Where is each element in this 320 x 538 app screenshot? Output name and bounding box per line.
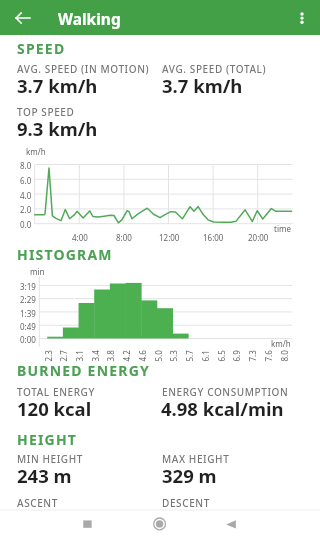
staticText: 243 m xyxy=(17,463,72,488)
staticText: DESCENT xyxy=(162,496,210,510)
button[interactable]: Home xyxy=(147,511,172,536)
staticText: 0.0 xyxy=(20,219,32,230)
button[interactable]: Back xyxy=(10,4,38,32)
staticText: 5.0 xyxy=(152,349,163,361)
staticText: 8.0 xyxy=(20,160,32,171)
staticText: 6.9 xyxy=(230,349,241,361)
staticText: km/h xyxy=(26,146,46,157)
staticText: Walking xyxy=(58,8,121,29)
staticText: 0:00 xyxy=(20,334,36,345)
staticText: TOTAL ENERGY xyxy=(17,385,95,399)
staticText: TOP SPEED xyxy=(17,105,75,119)
staticText: 2.7 xyxy=(57,349,68,361)
staticText: 3:19 xyxy=(20,281,36,292)
staticText: time xyxy=(274,223,291,234)
staticText: 0:49 xyxy=(20,321,36,332)
staticText: 2.3 xyxy=(42,349,53,361)
staticText: 16:00 xyxy=(203,232,224,243)
staticText: ENERGY CONSUMPTION xyxy=(162,385,289,399)
staticText: 120 kcal xyxy=(17,396,92,421)
staticText: 1:39 xyxy=(20,308,36,319)
staticText: 4.6 xyxy=(136,349,147,361)
staticText: km/h xyxy=(271,338,291,349)
staticText: 3.8 xyxy=(104,349,115,361)
staticText: SPEED xyxy=(17,39,66,58)
staticText: 3.7 km/h xyxy=(17,73,98,98)
staticText: 12:00 xyxy=(159,232,180,243)
staticText: HEIGHT xyxy=(17,430,78,449)
staticText: BURNED ENERGY xyxy=(17,361,150,380)
staticText: MIN HEIGHT xyxy=(17,452,84,466)
staticText: 3.1 xyxy=(73,349,84,361)
staticText: 9.3 km/h xyxy=(17,116,98,141)
button[interactable]: More options xyxy=(286,4,314,32)
staticText: 7.3 xyxy=(246,349,257,361)
staticText: 4.98 kcal/min xyxy=(161,396,284,421)
staticText: 4:00 xyxy=(72,232,88,243)
staticText: HISTOGRAM xyxy=(17,245,113,264)
staticText: 2.0 xyxy=(20,204,32,215)
staticText: ASCENT xyxy=(17,496,58,510)
staticText: 5.7 xyxy=(183,349,194,361)
staticText: 2:29 xyxy=(20,294,36,305)
staticText: 3.4 xyxy=(89,349,100,361)
button[interactable]: Back xyxy=(214,511,239,536)
staticText: 4.0 xyxy=(20,190,32,201)
staticText: 8:00 xyxy=(116,232,132,243)
staticText: 8.0 xyxy=(278,349,289,361)
staticText: 20:00 xyxy=(248,232,269,243)
staticText: 6.1 xyxy=(199,349,210,361)
staticText: AVG. SPEED (IN MOTION) xyxy=(17,62,150,76)
staticText: 3.7 km/h xyxy=(162,73,243,98)
staticText: 6.0 xyxy=(20,175,32,186)
button[interactable]: Recents xyxy=(75,511,100,536)
staticText: 329 m xyxy=(162,463,217,488)
staticText: 5.3 xyxy=(167,349,178,361)
staticText: min xyxy=(30,266,45,277)
staticText: 7.6 xyxy=(262,349,273,361)
staticText: 6.5 xyxy=(215,349,226,361)
staticText: MAX HEIGHT xyxy=(162,452,230,466)
staticText: 4.2 xyxy=(120,349,131,361)
staticText: AVG. SPEED (TOTAL) xyxy=(162,62,267,76)
